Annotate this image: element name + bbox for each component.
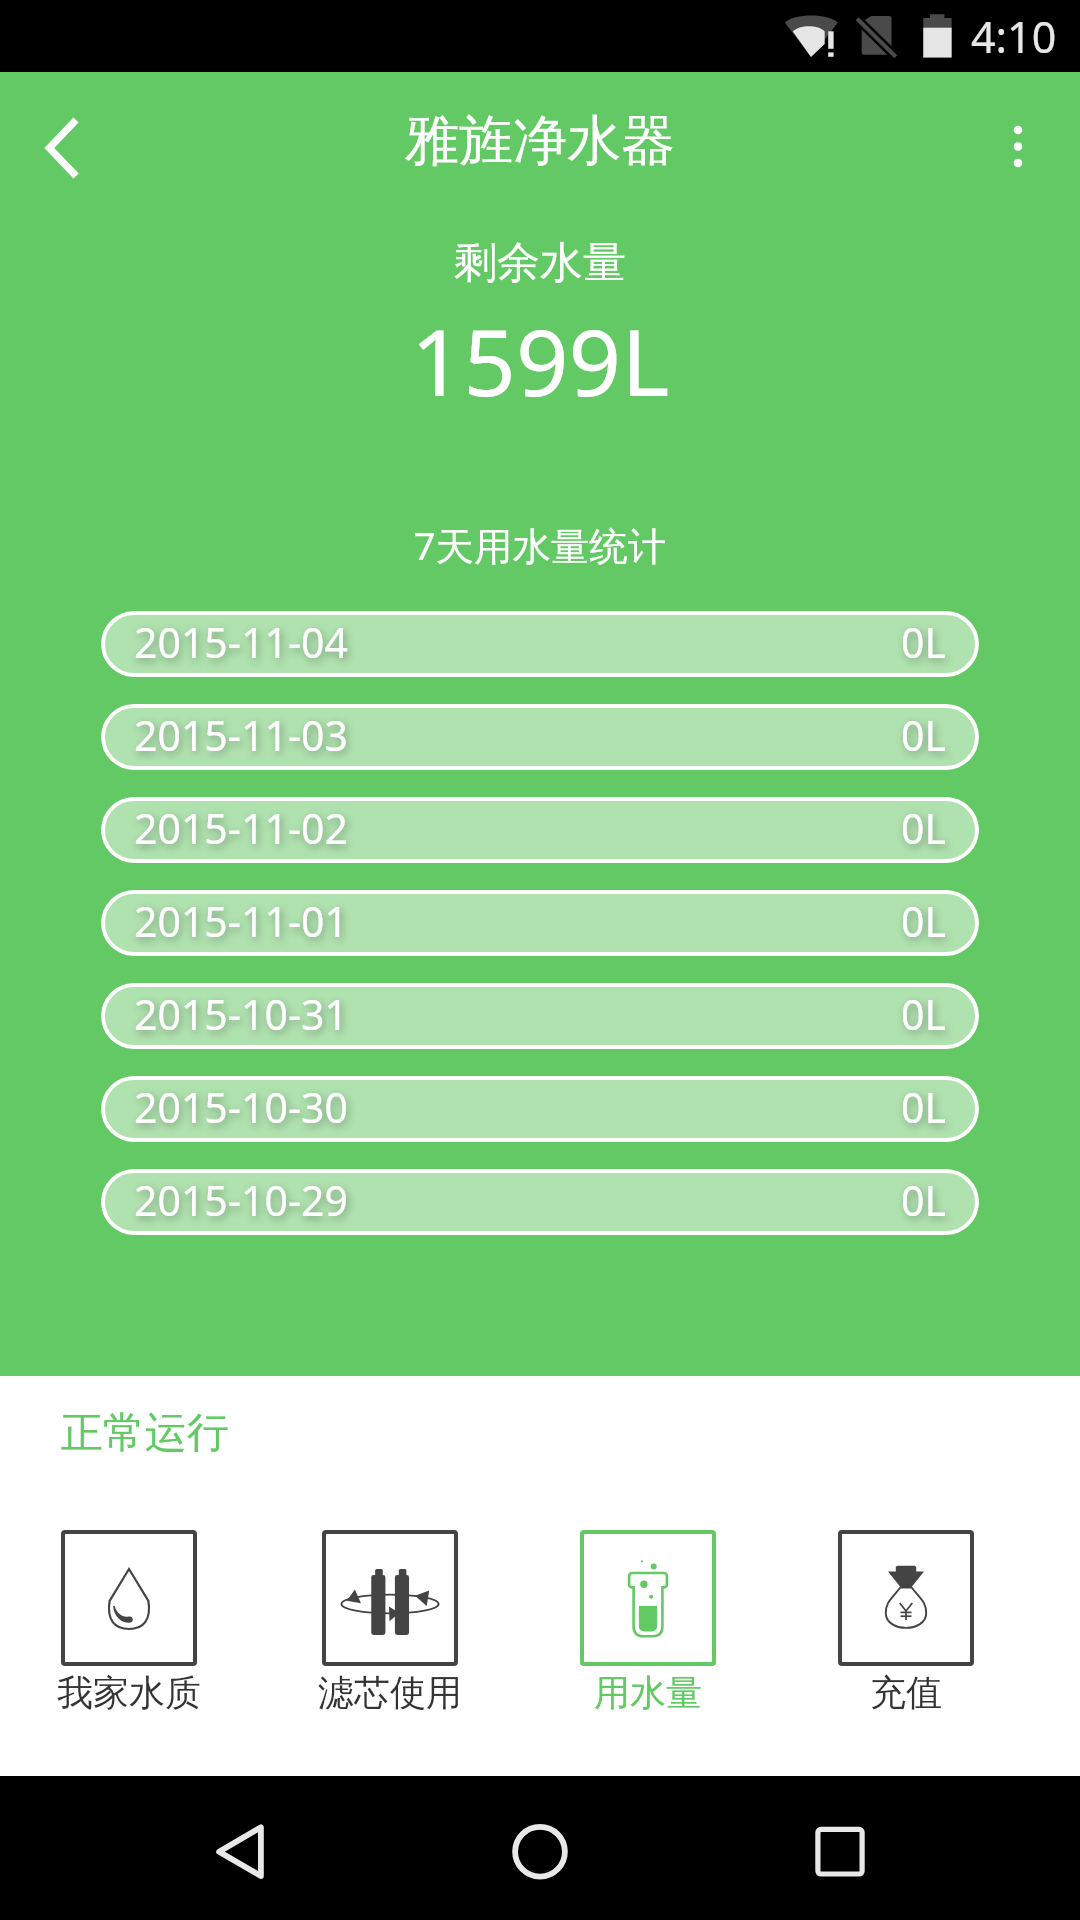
button[interactable]: 滤芯使用 (300, 1530, 480, 1715)
staticText: 2015-11-02 (134, 800, 349, 856)
button[interactable]: Home (470, 1776, 610, 1920)
staticText: 2015-10-31 (134, 986, 349, 1042)
button[interactable]: 2015-10-29 (101, 1169, 979, 1235)
button[interactable]: More options (966, 72, 1080, 212)
button[interactable]: 2015-11-03 (101, 704, 979, 770)
staticText: 0L (901, 1079, 946, 1135)
staticText: 2015-11-04 (134, 614, 349, 670)
button[interactable]: 2015-10-30 (101, 1076, 979, 1142)
button[interactable]: 用水量 (558, 1530, 738, 1715)
button[interactable]: Recents (770, 1776, 910, 1920)
staticText: 7天用水量统计 (0, 519, 1080, 572)
staticText: 2015-10-29 (134, 1172, 349, 1228)
staticText: 0L (901, 1172, 946, 1228)
staticText: 0L (901, 614, 946, 670)
button[interactable]: 充值 (816, 1530, 996, 1715)
staticText: 雅旌净水器 (405, 107, 675, 175)
staticText: 0L (901, 893, 946, 949)
button[interactable]: 2015-11-02 (101, 797, 979, 863)
staticText: 用水量 (594, 1670, 702, 1715)
staticText: 2015-10-30 (134, 1079, 349, 1135)
staticText: 正常运行 (61, 1407, 229, 1460)
staticText: 剩余水量 (0, 236, 1080, 290)
staticText: 0L (901, 707, 946, 763)
button[interactable]: 2015-10-31 (101, 983, 979, 1049)
button[interactable]: 2015-11-04 (101, 611, 979, 677)
button[interactable]: 我家水质 (39, 1530, 219, 1715)
staticText: 1599L (0, 298, 1080, 423)
staticText: 4:10 (971, 7, 1057, 66)
button[interactable]: 2015-11-01 (101, 890, 979, 956)
button[interactable]: Back (170, 1776, 310, 1920)
staticText: 充值 (870, 1670, 942, 1715)
staticText: 滤芯使用 (318, 1670, 462, 1715)
staticText: 我家水质 (57, 1670, 201, 1715)
button[interactable]: Back (0, 72, 110, 212)
staticText: 0L (901, 986, 946, 1042)
staticText: 2015-11-03 (134, 707, 349, 763)
staticText: 0L (901, 800, 946, 856)
staticText: 2015-11-01 (134, 893, 349, 949)
